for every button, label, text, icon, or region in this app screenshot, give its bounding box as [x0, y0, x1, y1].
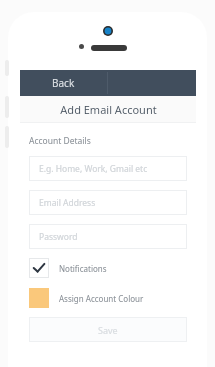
staticText: E.g. Home, Work, Gmail etc: [39, 163, 148, 175]
staticText: Assign Account Colour: [59, 293, 144, 304]
button[interactable]: Assign Account Colour: [29, 287, 187, 309]
button[interactable]: Password: [29, 224, 187, 249]
staticText: Password: [39, 231, 78, 243]
button[interactable]: Back: [20, 70, 107, 96]
staticText: Notifications: [59, 263, 107, 274]
staticText: Save: [98, 324, 118, 336]
button[interactable]: E.g. Home, Work, Gmail etc: [29, 156, 187, 181]
staticText: Account Details: [29, 135, 91, 147]
button[interactable]: Save: [29, 317, 187, 342]
staticText: Email Address: [39, 197, 96, 209]
staticText: Back: [52, 76, 75, 90]
button[interactable]: Email Address: [29, 190, 187, 215]
button[interactable]: Notifications: [29, 257, 187, 279]
staticText: Add Email Account: [60, 102, 157, 117]
